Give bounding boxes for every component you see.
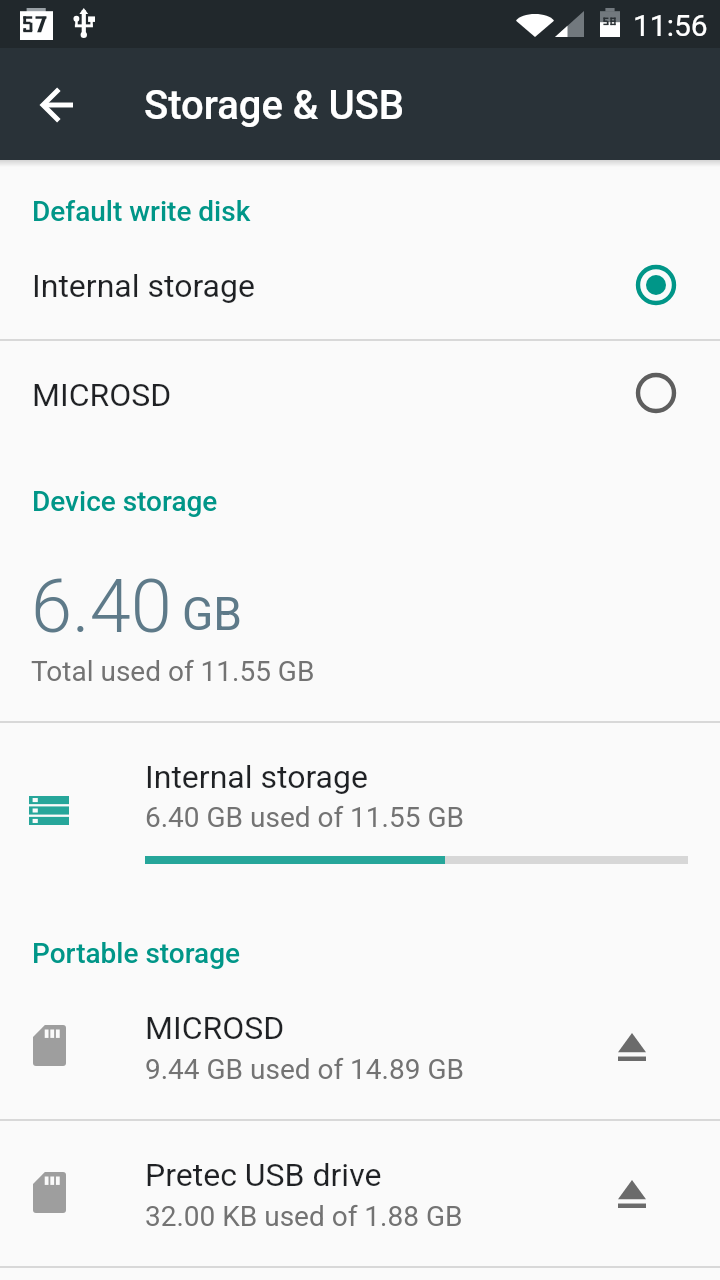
staticText: MICROSD xyxy=(145,1009,285,1047)
staticText: 32.00 KB used of 1.88 GB xyxy=(145,1200,463,1233)
button[interactable]: Pretec USB drive xyxy=(0,1119,720,1266)
staticText: Internal storage xyxy=(32,267,255,305)
button[interactable]: Internal storage xyxy=(0,227,720,339)
button[interactable]: MICROSD xyxy=(0,972,720,1119)
staticText: Pretec USB drive xyxy=(145,1156,382,1194)
button[interactable]: Navigate up xyxy=(22,69,94,141)
staticText: Device storage xyxy=(32,485,218,518)
button[interactable]: Eject MICROSD xyxy=(600,1015,664,1079)
staticText: Storage & USB xyxy=(144,82,405,129)
staticText: GB xyxy=(182,587,242,641)
staticText: Internal storage xyxy=(145,758,368,796)
staticText: 6.40 xyxy=(31,563,172,650)
staticText: 9.44 GB used of 14.89 GB xyxy=(145,1053,464,1086)
staticText: Total used of 11.55 GB xyxy=(31,655,315,688)
button[interactable]: MICROSD xyxy=(0,339,720,451)
staticText: 6.40 GB used of 11.55 GB xyxy=(145,801,464,834)
staticText: Portable storage xyxy=(32,937,241,970)
staticText: 11:56 xyxy=(633,8,708,43)
staticText: MICROSD xyxy=(32,376,172,414)
button[interactable]: Internal storage xyxy=(0,721,720,919)
button[interactable]: Internal storage selected xyxy=(622,251,690,319)
button[interactable]: Eject Pretec USB drive xyxy=(600,1162,664,1226)
button[interactable]: MICROSD xyxy=(622,359,690,427)
staticText: Default write disk xyxy=(32,195,251,228)
